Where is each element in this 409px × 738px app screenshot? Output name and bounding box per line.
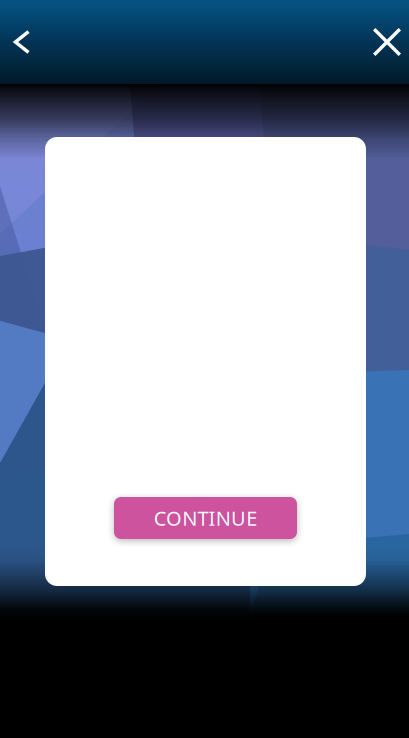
button[interactable]: CONTINUE — [114, 497, 297, 539]
staticText: CONTINUE — [154, 505, 257, 531]
button[interactable]: Close — [365, 0, 409, 84]
button[interactable]: Back — [0, 0, 44, 84]
